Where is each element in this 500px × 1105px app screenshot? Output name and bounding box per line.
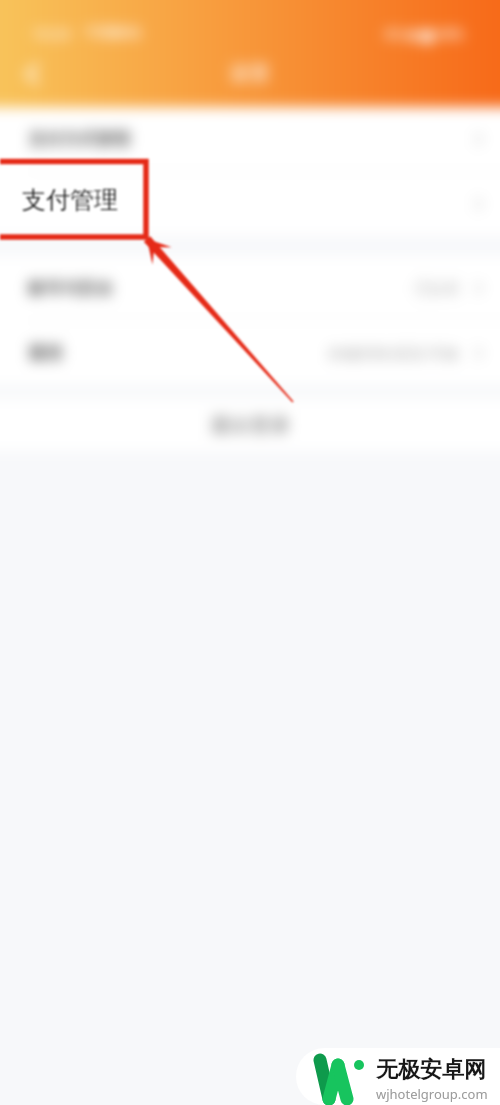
button[interactable] xyxy=(0,172,500,236)
staticText: 账号与安全 xyxy=(28,278,113,299)
staticText: 支付方式管理 xyxy=(28,129,130,150)
button[interactable]: 支付方式管理 xyxy=(0,107,500,172)
staticText: 支付管理 xyxy=(22,185,118,215)
staticText: 设置 xyxy=(230,61,270,86)
staticText: 中国移动 xyxy=(85,24,141,42)
staticText: 存储空间/语言/字体 xyxy=(328,343,460,363)
button[interactable]: 退出登录 xyxy=(0,399,500,451)
button[interactable]: 账号与安全 xyxy=(0,256,500,321)
staticText: 通用 xyxy=(28,343,62,364)
other: Back xyxy=(22,62,44,86)
staticText: 10:24 xyxy=(32,23,71,43)
staticText: 4G ◉ ▆ 46% xyxy=(384,24,464,43)
staticText: 无极安卓网 xyxy=(376,1056,486,1084)
button[interactable]: 通用 xyxy=(0,321,500,385)
staticText: 退出登录 xyxy=(210,413,290,438)
staticText: wjhotelgroup.com xyxy=(376,1085,488,1103)
